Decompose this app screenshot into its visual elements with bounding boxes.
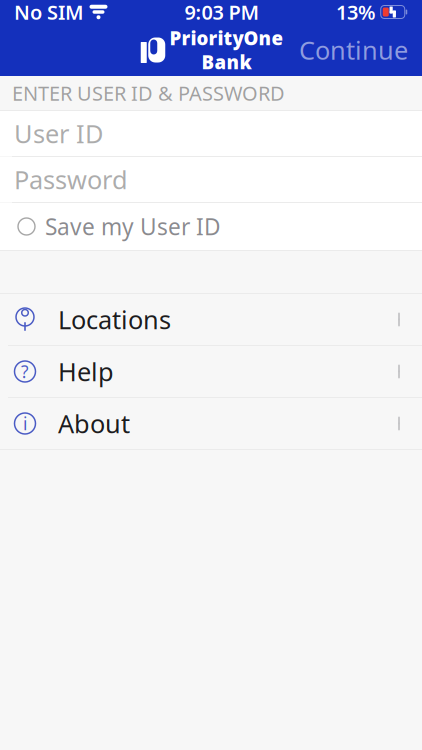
button[interactable]: i bbox=[0, 398, 422, 449]
staticText: Save my User ID bbox=[45, 211, 221, 241]
staticText: Bank bbox=[201, 49, 251, 74]
staticText: i bbox=[23, 412, 27, 435]
staticText: 13% bbox=[336, 0, 376, 25]
button[interactable]: Continue bbox=[285, 25, 422, 75]
staticText: Password bbox=[14, 163, 128, 196]
staticText: No SIM bbox=[14, 0, 84, 25]
button[interactable]: Locations bbox=[0, 294, 422, 345]
staticText: About bbox=[58, 407, 130, 440]
button[interactable]: Save my User ID bbox=[0, 203, 422, 250]
staticText: Help bbox=[58, 355, 114, 388]
staticText: ? bbox=[21, 360, 29, 383]
staticText: Locations bbox=[58, 303, 171, 336]
button[interactable]: ? bbox=[0, 346, 422, 397]
staticText: 9:03 PM bbox=[184, 0, 259, 25]
staticText: PriorityOne bbox=[169, 26, 283, 50]
staticText: User ID bbox=[14, 117, 103, 150]
staticText: ENTER USER ID & PASSWORD bbox=[12, 80, 285, 106]
staticText: Continue bbox=[299, 33, 408, 67]
